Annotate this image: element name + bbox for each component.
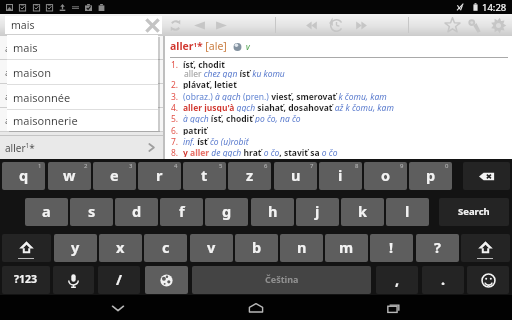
button[interactable]: p	[409, 162, 452, 190]
button[interactable]: Clear search	[146, 19, 159, 32]
button[interactable]: !	[370, 234, 413, 262]
button[interactable]: r	[138, 162, 181, 190]
button[interactable]: c	[144, 234, 187, 262]
button[interactable]: Shift	[2, 234, 51, 262]
button[interactable]: i	[319, 162, 362, 190]
button[interactable]: d	[115, 198, 158, 226]
button[interactable]: b	[235, 234, 278, 262]
button[interactable]: 6.	[168, 125, 512, 135]
button[interactable]: Next	[211, 15, 231, 35]
button[interactable]: Forward	[349, 15, 369, 35]
button[interactable]: allemand	[0, 108, 163, 131]
button[interactable]: Previous	[189, 15, 209, 35]
button[interactable]: Settings	[488, 15, 508, 35]
staticText: à qqch ísť, chodiť po čo, na čo	[183, 113, 301, 123]
staticText: 6.	[171, 125, 179, 135]
staticText: 4	[174, 162, 178, 170]
button[interactable]: Search options	[464, 15, 484, 35]
button[interactable]: 7.	[168, 136, 512, 146]
button[interactable]: 5.	[168, 113, 512, 123]
staticText: c	[162, 237, 170, 257]
staticText: b	[252, 237, 262, 257]
button[interactable]: Back	[303, 15, 323, 35]
button[interactable]: ,	[376, 266, 418, 294]
button[interactable]: Shift	[461, 234, 510, 262]
staticText: ?123	[14, 272, 38, 286]
staticText: plávať, letieť	[183, 79, 237, 89]
button[interactable]: o	[364, 162, 407, 190]
button[interactable]: j	[296, 198, 339, 226]
button[interactable]: Emoji	[467, 266, 509, 294]
button[interactable]: ?	[416, 234, 459, 262]
button[interactable]: 8.	[168, 147, 512, 157]
button[interactable]: /	[98, 266, 140, 294]
staticText: mais	[13, 40, 38, 55]
staticText: o	[381, 165, 391, 185]
button[interactable]: a	[25, 198, 68, 226]
staticText: 6	[264, 162, 268, 170]
staticText: maisonnée	[13, 90, 71, 105]
button[interactable]: Voice input	[53, 266, 94, 294]
button[interactable]: mais	[7, 35, 158, 59]
button[interactable]: w	[48, 162, 91, 190]
button[interactable]: q	[2, 162, 45, 190]
staticText: 5.	[171, 113, 179, 123]
staticText: patriť	[183, 125, 208, 135]
staticText: aller1*	[5, 141, 35, 155]
button[interactable]: l	[386, 198, 429, 226]
button[interactable]: Change language	[145, 266, 188, 294]
button[interactable]: Backspace	[463, 162, 510, 190]
staticText: inf. ísť čo (u)robiť	[183, 136, 249, 146]
button[interactable]: Search	[439, 198, 509, 226]
button[interactable]: Pronounce	[233, 42, 242, 51]
button[interactable]: n	[280, 234, 323, 262]
button[interactable]: 3.	[168, 91, 512, 101]
button[interactable]: Home	[236, 295, 276, 320]
button[interactable]: 4.	[168, 102, 512, 112]
button[interactable]: Favourite	[442, 15, 462, 35]
button[interactable]: maison	[7, 60, 158, 84]
button[interactable]: g	[205, 198, 248, 226]
button[interactable]: aller1* [ale]	[170, 39, 250, 53]
staticText: 4.	[171, 102, 179, 112]
button[interactable]: Back	[98, 295, 138, 320]
button[interactable]: Refresh	[165, 15, 185, 35]
staticText: ísť, chodiť	[183, 59, 225, 69]
button[interactable]: t	[183, 162, 226, 190]
staticText: 0	[445, 162, 449, 170]
button[interactable]: 2.	[168, 79, 512, 89]
button[interactable]: maisonnée	[7, 85, 158, 109]
button[interactable]: Recents	[374, 295, 414, 320]
button[interactable]: mais	[5, 16, 162, 34]
button[interactable]: x	[99, 234, 142, 262]
button[interactable]: v	[190, 234, 233, 262]
button[interactable]: s	[70, 198, 113, 226]
staticText: n	[297, 237, 307, 257]
button[interactable]: z	[228, 162, 271, 190]
button[interactable]: u	[274, 162, 317, 190]
button[interactable]: allee	[0, 84, 163, 107]
button[interactable]: h	[251, 198, 294, 226]
button[interactable]: History	[326, 15, 346, 35]
button[interactable]: 1.	[168, 59, 512, 69]
button[interactable]: e	[93, 162, 136, 190]
staticText: allegro	[5, 66, 35, 78]
button[interactable]: m	[325, 234, 368, 262]
staticText: 3.	[171, 91, 179, 101]
staticText: 2.	[171, 79, 179, 89]
staticText: u	[291, 165, 301, 185]
button[interactable]: aller	[0, 36, 163, 59]
button[interactable]: f	[160, 198, 203, 226]
button[interactable]: aller1*	[0, 136, 163, 159]
button[interactable]: k	[341, 198, 384, 226]
button[interactable]: allegro	[0, 60, 163, 83]
staticText: aller jusqu'à qqch siahať, dosahovať až …	[183, 102, 394, 112]
staticText: 1.	[171, 59, 179, 69]
button[interactable]: .	[422, 266, 464, 294]
staticText: e	[110, 165, 119, 185]
button[interactable]: y	[54, 234, 97, 262]
button[interactable]: maisonnerie	[7, 110, 158, 131]
staticText: aller1* [ale]	[170, 39, 227, 53]
button[interactable]: Čeština	[192, 266, 371, 294]
button[interactable]: ?123	[2, 266, 50, 294]
